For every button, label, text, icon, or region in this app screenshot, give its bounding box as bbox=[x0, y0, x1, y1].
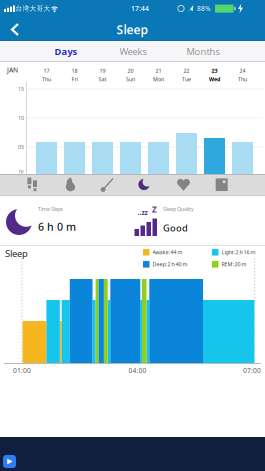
staticText: 6 h 0 m bbox=[38, 219, 76, 234]
staticText: 15 bbox=[18, 85, 24, 93]
staticText: 台湾大哥大 bbox=[15, 4, 50, 13]
staticText: 07:00 bbox=[243, 366, 261, 375]
button[interactable]: Sleep bbox=[132, 175, 156, 195]
staticText: hr bbox=[19, 168, 24, 175]
button[interactable]: 23 bbox=[201, 64, 227, 86]
staticText: 88% bbox=[197, 4, 211, 13]
staticText: 10 bbox=[18, 114, 24, 122]
staticText: 20 bbox=[127, 67, 133, 74]
staticText: 21 bbox=[155, 67, 161, 74]
button[interactable]: Days bbox=[38, 41, 94, 61]
staticText: Z bbox=[152, 204, 157, 215]
button[interactable]: Weight bbox=[209, 175, 233, 195]
staticText: Light: 2 h 16 m bbox=[221, 249, 255, 256]
button[interactable]: Heart rate bbox=[171, 175, 195, 195]
button[interactable]: Calories bbox=[58, 175, 82, 195]
staticText: 04:00 bbox=[128, 366, 146, 375]
button[interactable]: 17 bbox=[33, 64, 59, 86]
staticText: 19 bbox=[99, 67, 105, 74]
staticText: Months bbox=[186, 45, 219, 57]
button[interactable]: 24 bbox=[229, 64, 255, 86]
button[interactable]: Activity bbox=[95, 175, 119, 195]
button[interactable]: Advertisement bbox=[0, 437, 265, 471]
staticText: Fri bbox=[71, 76, 77, 83]
staticText: Sun bbox=[126, 76, 135, 83]
staticText: Sleep bbox=[116, 21, 148, 37]
staticText: JAN bbox=[7, 66, 18, 74]
staticText: Good bbox=[163, 222, 188, 234]
button[interactable]: 20 bbox=[117, 64, 143, 86]
staticText: 17 bbox=[43, 67, 49, 74]
staticText: REM: 20 m bbox=[221, 261, 246, 268]
staticText: Days bbox=[54, 45, 77, 57]
staticText: Mon bbox=[153, 76, 164, 83]
staticText: Time Slept bbox=[38, 205, 63, 213]
button[interactable]: 21 bbox=[145, 64, 171, 86]
staticText: 17:44 bbox=[131, 4, 149, 13]
button[interactable]: Ad information bbox=[3, 455, 16, 468]
staticText: 18 bbox=[71, 67, 77, 74]
staticText: 22 bbox=[183, 67, 189, 74]
button[interactable]: 18 bbox=[61, 64, 87, 86]
button[interactable]: Back bbox=[1, 18, 29, 41]
button[interactable]: Months bbox=[175, 41, 231, 61]
staticText: Weeks bbox=[119, 45, 146, 57]
button[interactable]: 22 bbox=[173, 64, 199, 86]
button[interactable]: 19 bbox=[89, 64, 115, 86]
staticText: Sleep bbox=[5, 247, 28, 260]
staticText: 24 bbox=[239, 67, 245, 74]
staticText: Sleep Quality bbox=[163, 205, 194, 213]
staticText: Sat bbox=[98, 76, 106, 83]
staticText: 05 bbox=[18, 143, 24, 151]
staticText: ..zz bbox=[137, 208, 147, 217]
staticText: Tue bbox=[182, 76, 191, 83]
staticText: 23 bbox=[211, 67, 217, 74]
button[interactable]: Steps bbox=[20, 175, 44, 195]
staticText: Wed bbox=[209, 76, 220, 83]
staticText: Thu bbox=[238, 76, 247, 83]
staticText: 01:00 bbox=[13, 366, 31, 375]
button[interactable]: Weeks bbox=[105, 41, 161, 61]
staticText: Deep: 2 h 40 m bbox=[152, 261, 187, 268]
staticText: Awake: 44 m bbox=[152, 249, 182, 256]
staticText: Thu bbox=[42, 76, 51, 83]
